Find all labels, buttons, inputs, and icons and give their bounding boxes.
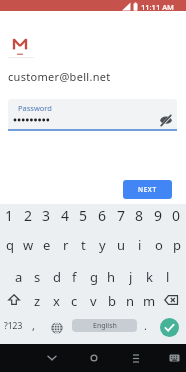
staticText: p: [173, 236, 181, 253]
button[interactable]: k: [140, 268, 159, 285]
staticText: s: [34, 268, 41, 285]
staticText: 1: [5, 206, 14, 224]
button[interactable]: 9: [149, 206, 168, 224]
button[interactable]: h: [102, 268, 121, 285]
button[interactable]: ,: [26, 316, 40, 334]
staticText: 2: [24, 206, 33, 224]
staticText: b: [108, 292, 116, 309]
staticText: 11:11 AM: [141, 2, 174, 12]
button[interactable]: g: [84, 268, 103, 285]
staticText: a: [15, 268, 23, 285]
button[interactable]: o: [149, 236, 168, 253]
button[interactable]: 1: [0, 206, 19, 224]
button[interactable]: .: [139, 316, 151, 334]
staticText: k: [146, 268, 153, 285]
staticText: m: [143, 292, 156, 309]
button[interactable]: [165, 350, 183, 366]
button[interactable]: [126, 349, 146, 367]
button[interactable]: 4: [56, 206, 75, 224]
staticText: n: [126, 292, 135, 309]
staticText: l: [166, 268, 170, 285]
button[interactable]: b: [102, 292, 121, 309]
button[interactable]: [157, 111, 175, 129]
button[interactable]: 6: [93, 206, 112, 224]
button[interactable]: d: [47, 268, 66, 285]
button[interactable]: x: [47, 292, 66, 309]
staticText: h: [107, 268, 116, 285]
staticText: g: [90, 268, 98, 285]
button[interactable]: c: [65, 292, 84, 309]
staticText: f: [72, 268, 77, 285]
button[interactable]: f: [65, 268, 84, 285]
staticText: 7: [117, 206, 126, 224]
button[interactable]: e: [37, 236, 56, 253]
button[interactable]: [160, 293, 182, 307]
staticText: q: [6, 236, 14, 253]
button[interactable]: w: [19, 236, 38, 253]
staticText: 4: [61, 206, 70, 224]
button[interactable]: [160, 318, 179, 337]
staticText: x: [53, 292, 60, 309]
staticText: 3: [42, 206, 51, 224]
button[interactable]: 3: [37, 206, 56, 224]
staticText: t: [81, 236, 86, 253]
staticText: ?123: [4, 320, 23, 332]
staticText: customer@bell.net: [8, 69, 111, 84]
button[interactable]: English: [72, 319, 137, 332]
button[interactable]: v: [84, 292, 103, 309]
staticText: ,: [32, 318, 35, 333]
button[interactable]: i: [130, 236, 149, 253]
staticText: 9: [154, 206, 163, 224]
staticText: y: [99, 236, 106, 253]
button[interactable]: [4, 292, 24, 306]
button[interactable]: y: [93, 236, 112, 253]
staticText: v: [90, 292, 97, 309]
staticText: English: [93, 321, 117, 331]
button[interactable]: s: [28, 268, 47, 285]
button[interactable]: t: [74, 236, 93, 253]
staticText: e: [43, 236, 51, 253]
staticText: w: [23, 236, 34, 253]
staticText: i: [138, 236, 142, 253]
staticText: NEXT: [138, 185, 157, 194]
staticText: j: [129, 268, 133, 285]
staticText: r: [63, 236, 69, 253]
button[interactable]: Password: [8, 99, 177, 129]
button[interactable]: 0: [167, 206, 186, 224]
staticText: Password: [18, 103, 52, 113]
button[interactable]: NEXT: [123, 180, 172, 199]
button[interactable]: 2: [19, 206, 38, 224]
staticText: .: [144, 318, 147, 333]
staticText: o: [155, 236, 163, 253]
button[interactable]: j: [121, 268, 140, 285]
staticText: d: [53, 268, 61, 285]
button[interactable]: a: [9, 268, 28, 285]
staticText: 8: [135, 206, 144, 224]
button[interactable]: 8: [130, 206, 149, 224]
button[interactable]: m: [140, 292, 159, 309]
button[interactable]: n: [121, 292, 140, 309]
button[interactable]: ?123: [0, 319, 26, 333]
button[interactable]: [47, 320, 66, 336]
button[interactable]: 5: [74, 206, 93, 224]
staticText: 5: [79, 206, 88, 224]
button[interactable]: l: [158, 268, 177, 285]
button[interactable]: u: [112, 236, 131, 253]
button[interactable]: q: [0, 236, 19, 253]
button[interactable]: [42, 349, 62, 367]
button[interactable]: p: [167, 236, 186, 253]
button[interactable]: z: [28, 292, 47, 309]
staticText: c: [71, 292, 78, 309]
button[interactable]: [84, 349, 104, 367]
staticText: 0: [172, 206, 181, 224]
staticText: 6: [98, 206, 107, 224]
staticText: u: [117, 236, 126, 253]
button[interactable]: 7: [112, 206, 131, 224]
button[interactable]: r: [56, 236, 75, 253]
staticText: z: [34, 292, 41, 309]
